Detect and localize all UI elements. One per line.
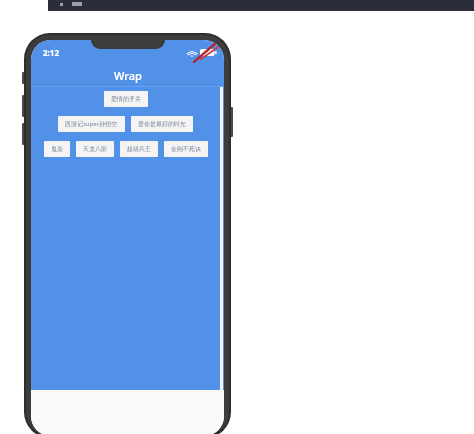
staticText: 超级兵王 xyxy=(127,145,151,153)
staticText: 金刚不死诀 xyxy=(171,145,201,153)
staticText: 2:12 xyxy=(43,47,59,58)
staticText: 爱你是最好的时光 xyxy=(138,120,186,128)
staticText: 爱情的开关 xyxy=(111,95,141,103)
button[interactable]: 超级兵王 xyxy=(120,141,158,157)
staticText: 天龙八部 xyxy=(83,145,107,153)
button[interactable]: 金刚不死诀 xyxy=(164,141,208,157)
button[interactable]: 爱情的开关 xyxy=(104,91,148,107)
button[interactable]: 西游记super孙悟空 xyxy=(58,116,125,132)
staticText: 西游记super孙悟空 xyxy=(65,120,118,128)
button[interactable]: 天龙八部 xyxy=(76,141,114,157)
staticText: Wrap xyxy=(114,68,142,83)
button[interactable]: 鬼壶 xyxy=(44,141,70,157)
staticText: 鬼壶 xyxy=(51,145,63,153)
button[interactable]: 爱你是最好的时光 xyxy=(131,116,193,132)
